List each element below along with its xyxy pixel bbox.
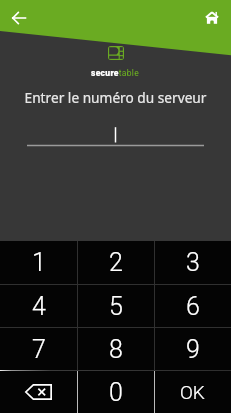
staticText: 3 (186, 248, 200, 277)
button[interactable]: 5 (77, 285, 154, 327)
button[interactable]: Backspace (0, 371, 77, 413)
staticText: 4 (32, 292, 46, 321)
button[interactable]: 2 (77, 241, 154, 284)
staticText: 1 (32, 248, 46, 277)
button[interactable]: 1 (0, 241, 77, 284)
staticText: 0 (109, 378, 123, 407)
staticText: 6 (186, 292, 200, 321)
staticText: 8 (109, 335, 123, 364)
button[interactable]: 7 (0, 328, 77, 370)
staticText: securetable (91, 68, 140, 78)
staticText: 9 (186, 335, 200, 364)
button[interactable]: 9 (154, 328, 231, 370)
button[interactable]: 8 (77, 328, 154, 370)
button[interactable]: 0 (77, 371, 154, 413)
button[interactable]: 6 (154, 285, 231, 327)
button[interactable]: Home (198, 3, 226, 31)
button[interactable]: 4 (0, 285, 77, 327)
staticText: 5 (109, 292, 123, 321)
button[interactable]: OK (154, 371, 231, 413)
button[interactable]: 3 (154, 241, 231, 284)
button[interactable]: Back (5, 4, 33, 32)
staticText: 7 (32, 335, 46, 364)
staticText: Entrer le numéro du serveur (0, 88, 231, 107)
staticText: OK (180, 381, 205, 403)
staticText: 2 (109, 248, 123, 277)
